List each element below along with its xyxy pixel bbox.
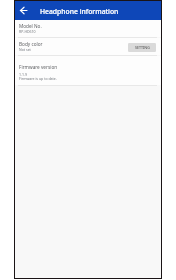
button[interactable]: Back	[17, 4, 30, 17]
staticText: 1.1.9	[19, 72, 27, 77]
staticText: Body color	[19, 41, 43, 47]
button[interactable]: Firmware version	[15, 56, 161, 85]
staticText: SETTING	[135, 45, 150, 50]
staticText: Not set	[19, 47, 31, 52]
button[interactable]: Model No.	[15, 20, 161, 37]
button[interactable]: SETTING	[128, 43, 156, 52]
button[interactable]: Body color	[15, 38, 161, 55]
staticText: Model No.	[19, 23, 42, 29]
staticText: RP-HD610	[19, 29, 36, 34]
staticText: Firmware version	[19, 64, 58, 70]
staticText: Headphone information	[40, 7, 119, 16]
staticText: Firmware is up to date.	[19, 76, 57, 81]
